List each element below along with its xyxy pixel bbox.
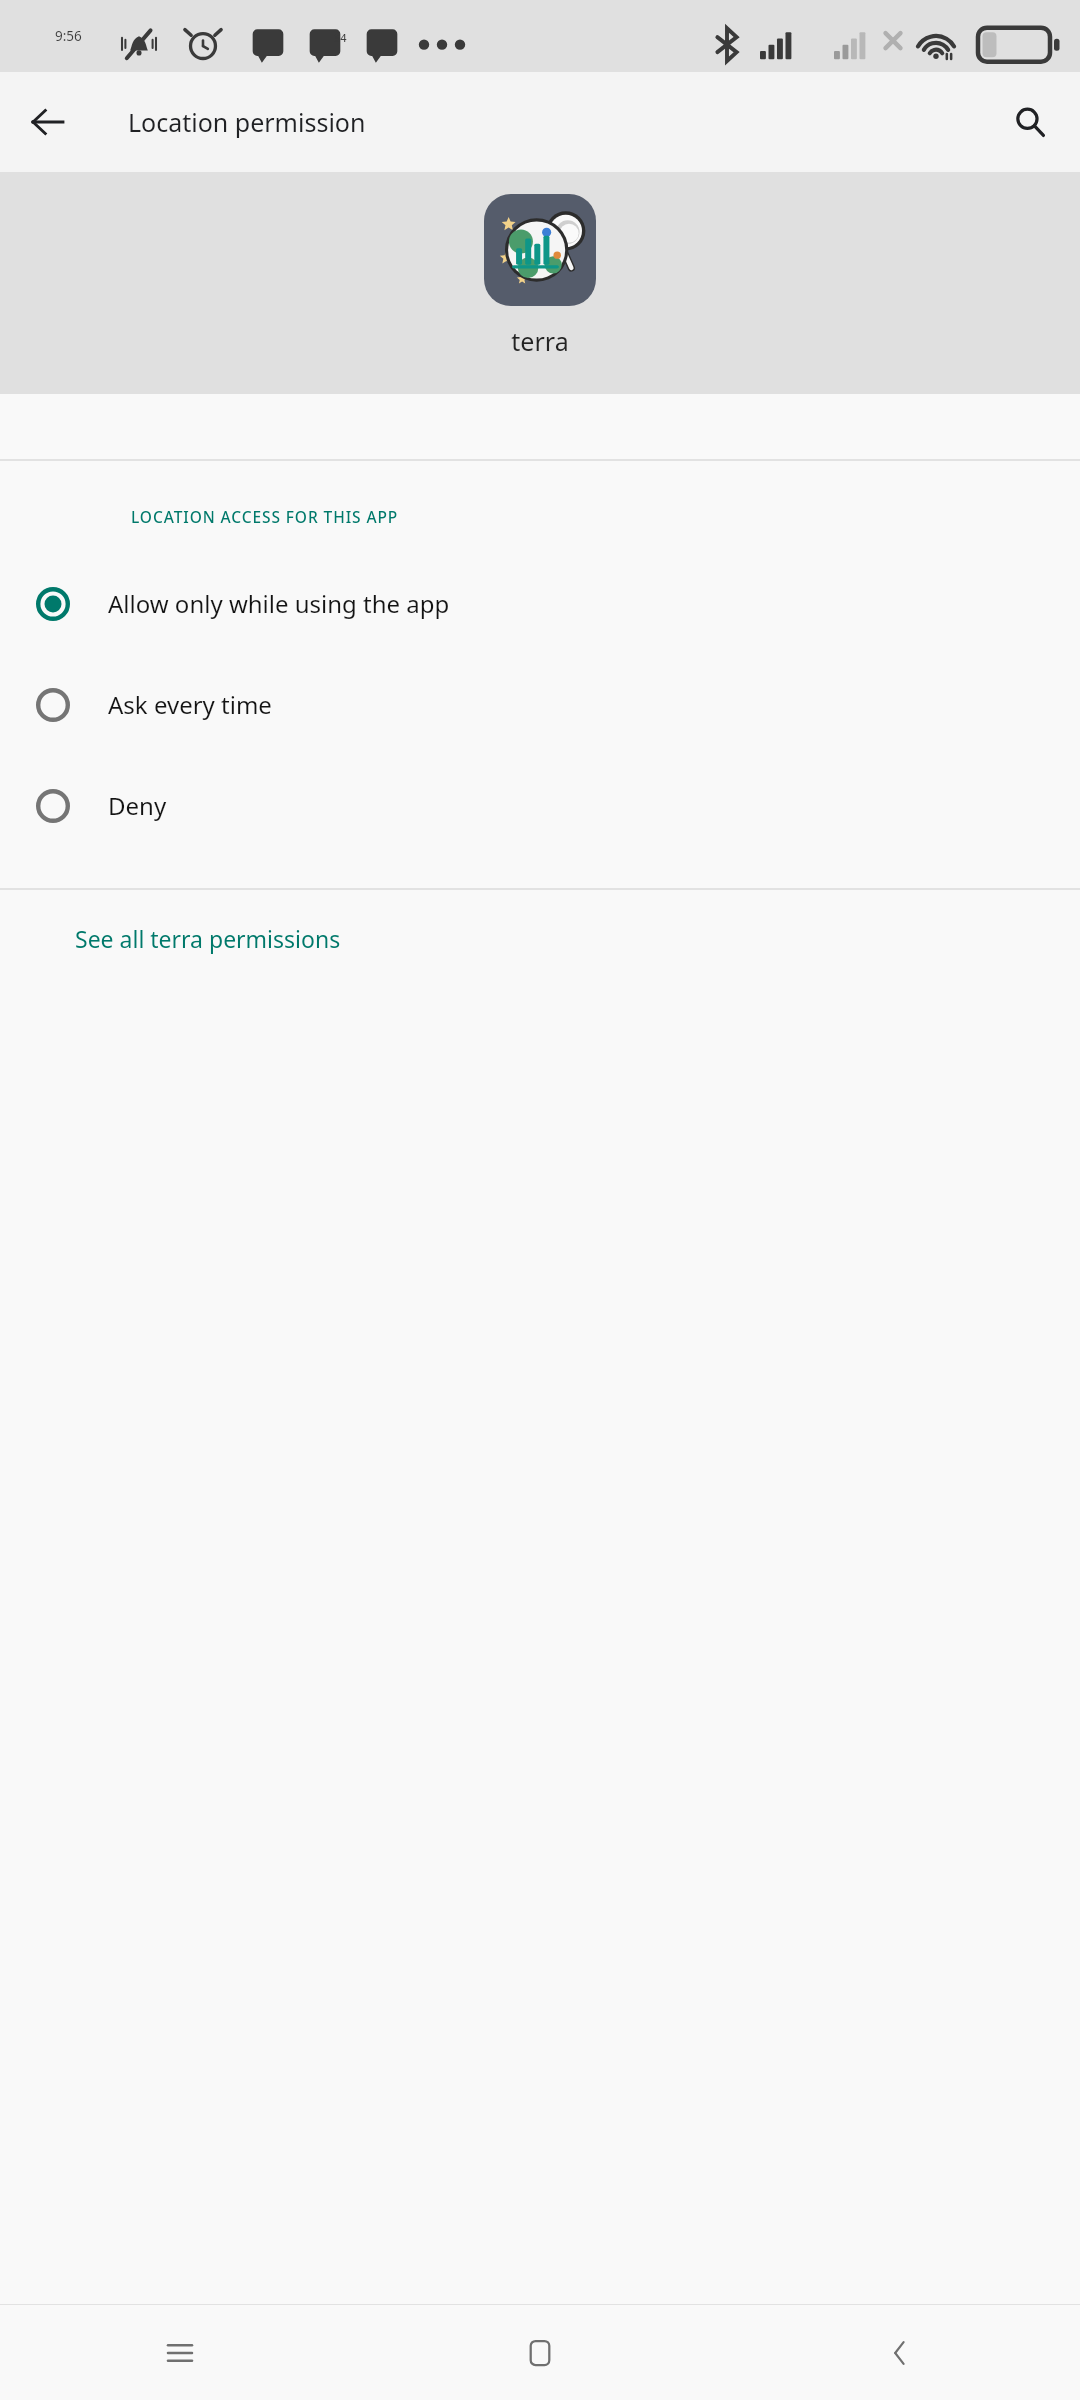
staticText: terra — [511, 324, 569, 358]
button[interactable]: Back — [16, 90, 80, 154]
staticText: LOCATION ACCESS FOR THIS APP — [131, 506, 399, 527]
staticText: Ask every time — [108, 688, 272, 721]
button[interactable]: Back — [720, 2305, 1080, 2400]
staticText: 9:56 — [55, 27, 82, 45]
button[interactable]: See all terra permissions — [0, 890, 1080, 986]
staticText: Deny — [108, 789, 167, 822]
staticText: Location permission — [128, 105, 366, 139]
staticText: Allow only while using the app — [108, 587, 450, 620]
button[interactable]: Allow only while using the app — [0, 553, 1080, 654]
button[interactable]: Recents — [0, 2305, 360, 2400]
button[interactable]: Ask every time — [0, 654, 1080, 755]
staticText: 54 — [334, 30, 347, 45]
button[interactable]: Deny — [0, 755, 1080, 856]
staticText: See all terra permissions — [75, 923, 341, 954]
button[interactable]: Search — [998, 90, 1062, 154]
button[interactable]: Home — [360, 2305, 720, 2400]
